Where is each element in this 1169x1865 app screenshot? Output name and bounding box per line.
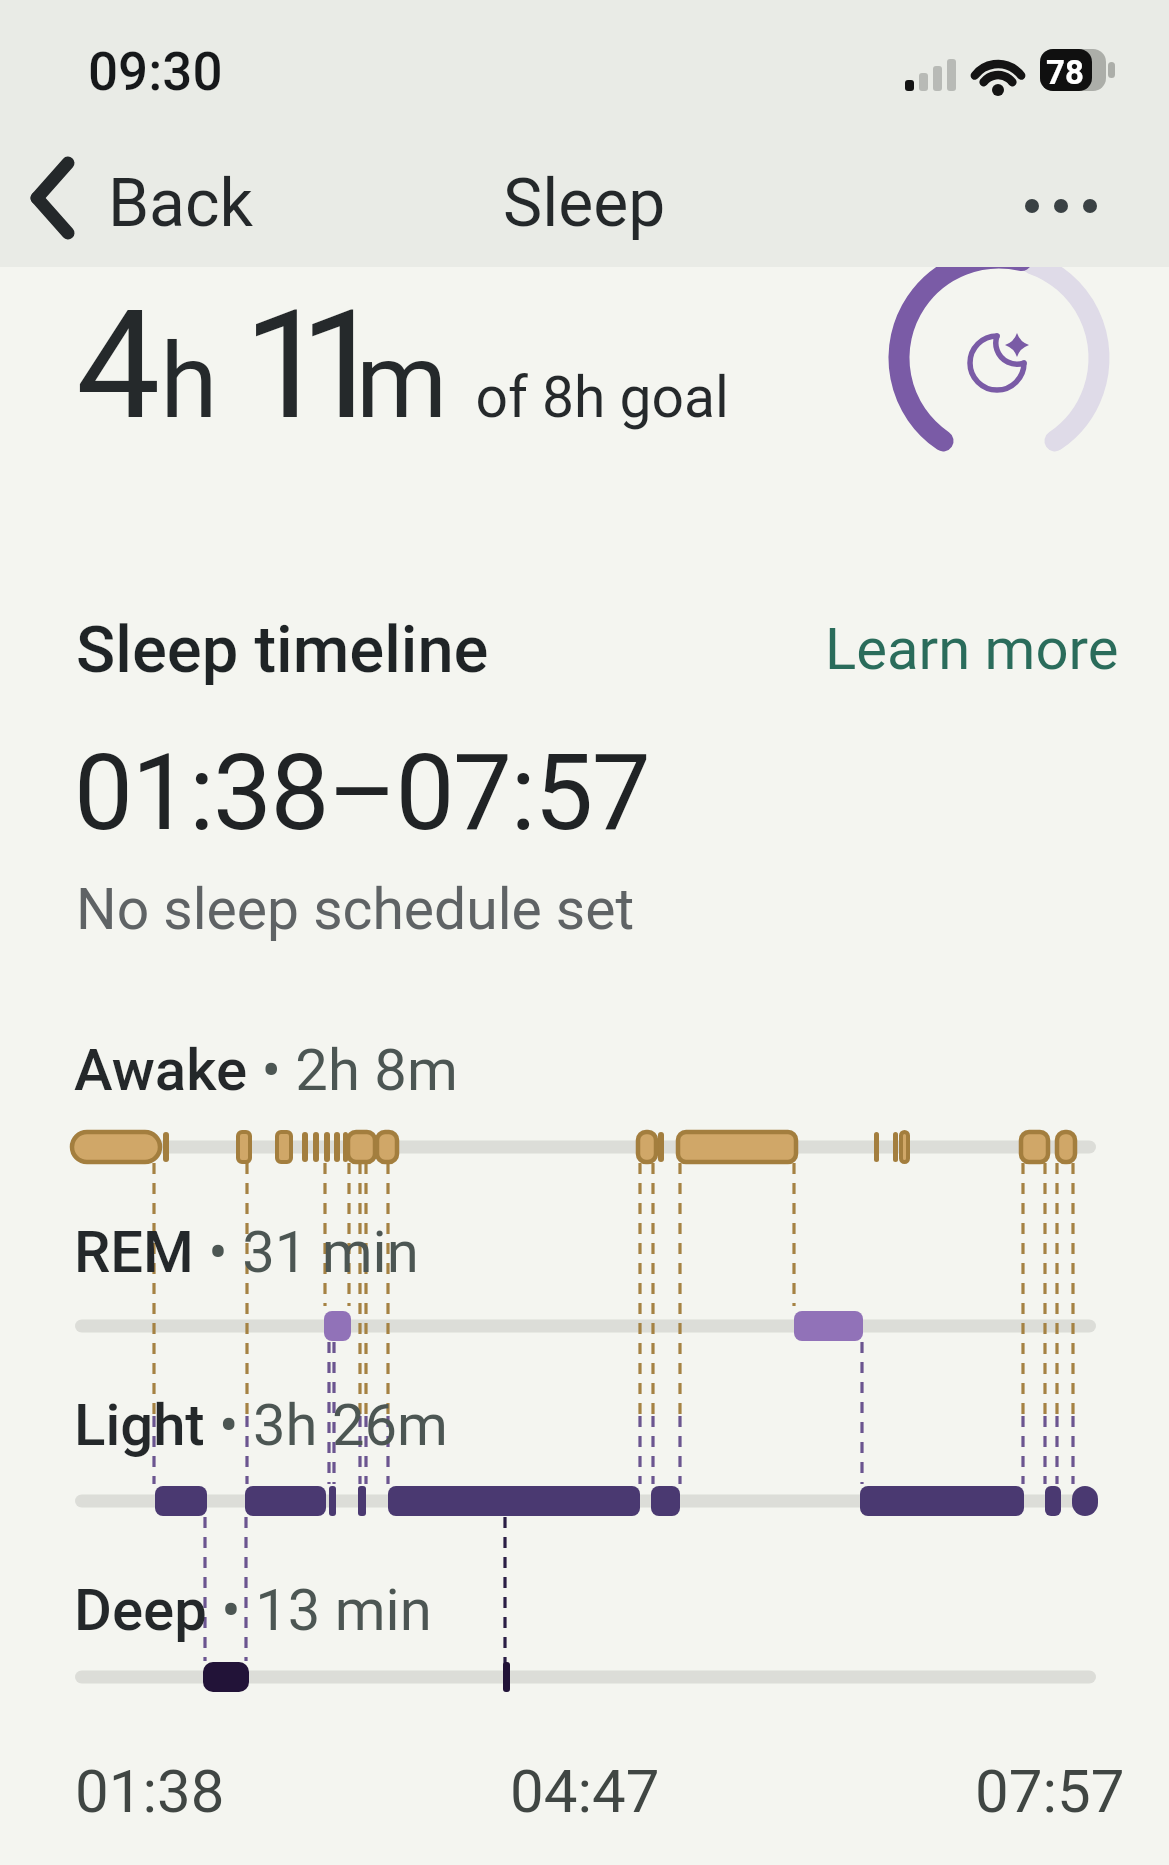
staticText: Sleep — [503, 165, 666, 242]
staticText: Deep • 13 min — [74, 1576, 432, 1644]
staticText: 07:57 — [975, 1756, 1125, 1826]
staticText: 78 — [1046, 53, 1084, 92]
staticText: Light • 3h 26m — [74, 1391, 448, 1459]
staticText: 01:38–07:57 — [74, 732, 650, 855]
staticText: 04:47 — [510, 1756, 660, 1826]
staticText: 09:30 — [88, 41, 223, 103]
staticText: Sleep timeline — [76, 612, 489, 688]
staticText: 4h 11m of 8h goal — [76, 278, 729, 454]
staticText: Learn more — [825, 615, 1119, 683]
button[interactable] — [1000, 165, 1120, 250]
staticText: REM • 31 min — [74, 1218, 419, 1286]
staticText: Back — [108, 165, 254, 242]
staticText: No sleep schedule set — [76, 876, 635, 943]
staticText: 01:38 — [75, 1756, 225, 1826]
button[interactable]: Back — [20, 150, 250, 250]
button[interactable]: Learn more — [810, 600, 1120, 690]
staticText: Awake • 2h 8m — [74, 1036, 458, 1104]
